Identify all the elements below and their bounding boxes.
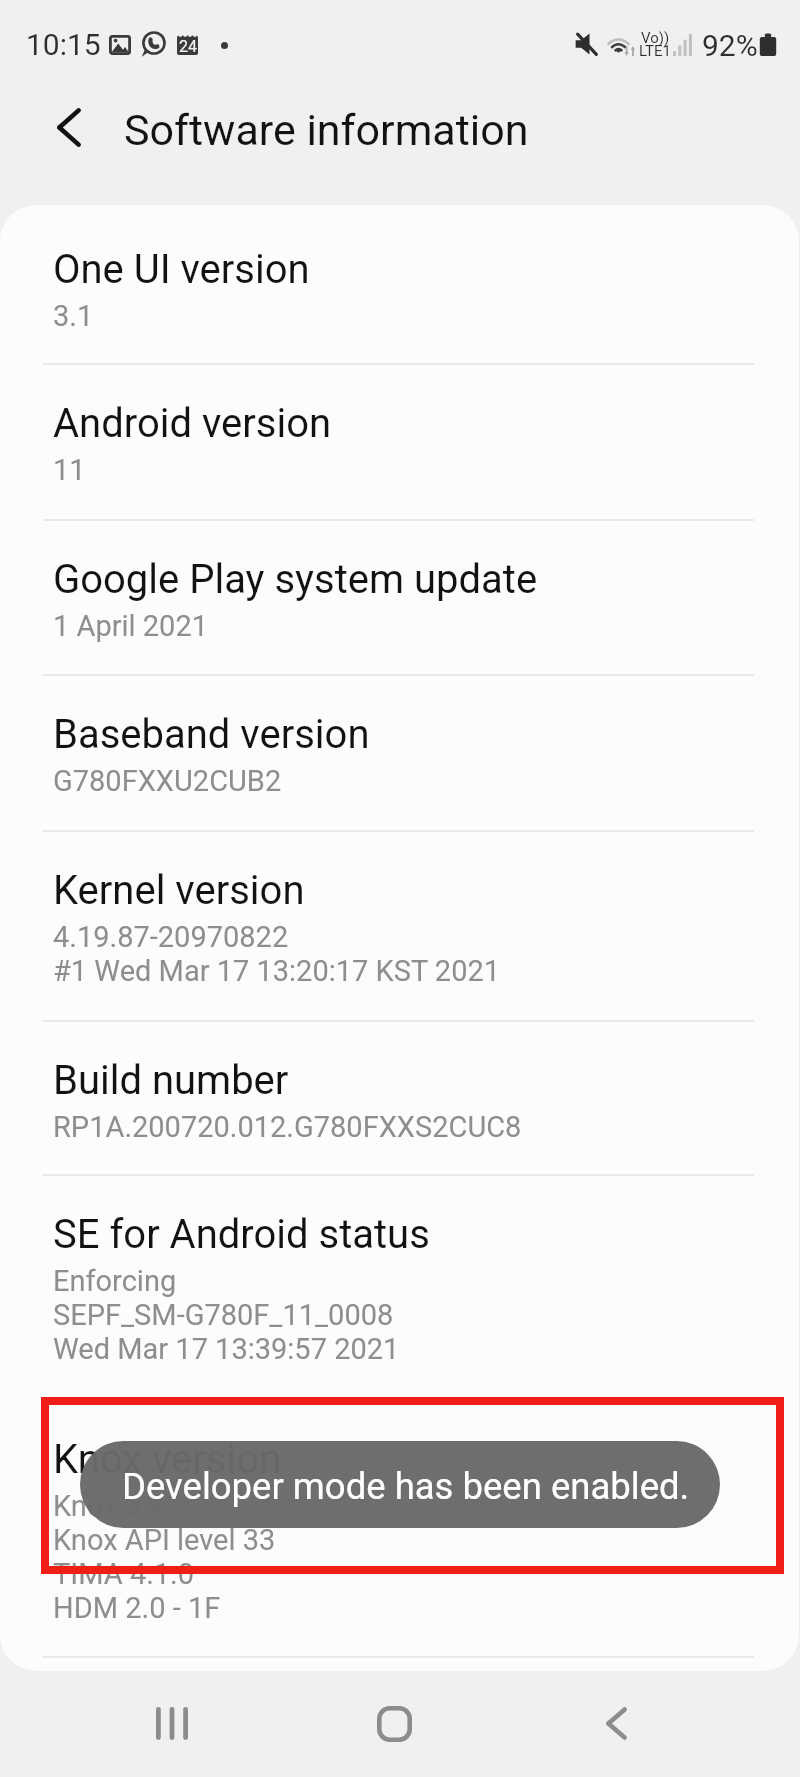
staticText: TIMA 4.1.0 (53, 1557, 195, 1591)
staticText: Baseband version (53, 711, 370, 758)
staticText: Build number (53, 1057, 289, 1104)
staticText: Wed Mar 17 13:39:57 2021 (53, 1332, 400, 1366)
staticText: Knox API level 33 (53, 1523, 276, 1557)
button[interactable]: Kernel version (0, 832, 800, 1022)
staticText: One UI version (53, 246, 310, 293)
staticText: #1 Wed Mar 17 13:20:17 KST 2021 (53, 954, 501, 988)
staticText: 92% (702, 28, 758, 63)
staticText: SE for Android status (53, 1211, 430, 1258)
staticText: Developer mode has been enabled. (122, 1465, 690, 1508)
button[interactable]: Home (340, 1670, 448, 1777)
staticText: Knox 3.7 (53, 1489, 165, 1523)
button[interactable]: Baseband version (0, 676, 800, 832)
staticText: G780FXXU2CUB2 (53, 764, 282, 798)
staticText: LTE1 (639, 42, 671, 60)
button[interactable]: Recent apps (118, 1670, 226, 1777)
staticText: 4.19.87-20970822 (53, 920, 289, 954)
staticText: Enforcing (53, 1264, 177, 1298)
staticText: 10:15 (26, 27, 101, 62)
staticText: HDM 2.0 - 1F (53, 1591, 221, 1625)
button[interactable]: Knox version (0, 1401, 800, 1658)
button[interactable]: Android version (0, 365, 800, 521)
staticText: Kernel version (53, 867, 305, 914)
staticText: 3.1 (53, 299, 94, 333)
staticText: RP1A.200720.012.G780FXXS2CUC8 (53, 1110, 522, 1144)
button[interactable]: One UI version (0, 211, 800, 365)
staticText: SEPF_SM-G780F_11_0008 (53, 1298, 394, 1332)
staticText: Knox version (53, 1436, 282, 1483)
button[interactable]: Back (562, 1670, 670, 1777)
button[interactable]: Navigate up (25, 83, 113, 171)
staticText: Android version (53, 400, 332, 447)
staticText: 11 (53, 453, 86, 487)
button[interactable]: SE for Android status (0, 1176, 800, 1401)
button[interactable]: Build number (0, 1022, 800, 1176)
staticText: 1 April 2021 (53, 609, 209, 643)
staticText: Software information (124, 105, 529, 155)
staticText: 24 (179, 37, 197, 56)
staticText: Google Play system update (53, 556, 538, 603)
button[interactable]: Google Play system update (0, 521, 800, 676)
staticText: Vo)) (641, 29, 670, 47)
